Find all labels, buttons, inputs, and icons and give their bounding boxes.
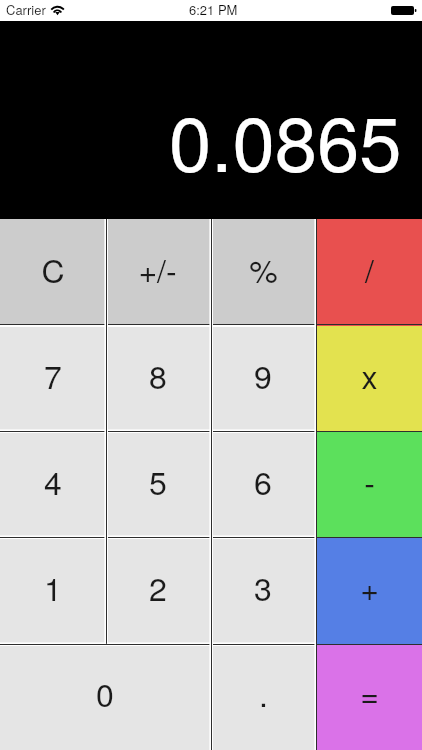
staticText: / — [365, 246, 374, 292]
button[interactable]: = — [316, 644, 422, 750]
button[interactable]: 5 — [105, 432, 210, 538]
staticText: 6:21 PM — [189, 0, 238, 19]
staticText: Carrier — [6, 0, 46, 19]
staticText: 9 — [254, 352, 272, 398]
button[interactable]: 1 — [0, 538, 105, 644]
staticText: . — [259, 670, 268, 716]
button[interactable]: 4 — [0, 432, 105, 538]
staticText: - — [364, 458, 375, 504]
button[interactable]: / — [316, 219, 422, 326]
staticText: 0.0865 — [169, 85, 402, 194]
button[interactable]: . — [210, 644, 316, 750]
staticText: 6 — [254, 458, 272, 504]
button[interactable]: 7 — [0, 326, 105, 432]
button[interactable]: 3 — [210, 538, 316, 644]
button[interactable]: - — [316, 432, 422, 538]
staticText: 2 — [149, 564, 167, 610]
staticText: 1 — [44, 564, 62, 610]
staticText: 0 — [96, 670, 114, 716]
other: Wi-Fi signal — [51, 5, 64, 15]
staticText: = — [360, 670, 379, 716]
other: Battery full — [391, 6, 416, 15]
button[interactable]: +/- — [105, 219, 210, 326]
button[interactable]: 8 — [105, 326, 210, 432]
staticText: C — [41, 246, 65, 292]
button[interactable]: x — [316, 326, 422, 432]
button[interactable]: 6 — [210, 432, 316, 538]
staticText: 3 — [254, 564, 272, 610]
button[interactable]: C — [0, 219, 105, 326]
button[interactable]: + — [316, 538, 422, 644]
staticText: 5 — [149, 458, 167, 504]
staticText: + — [360, 564, 379, 610]
button[interactable]: 2 — [105, 538, 210, 644]
button[interactable]: 0 — [0, 644, 210, 750]
staticText: % — [249, 246, 278, 292]
button[interactable]: % — [210, 219, 316, 326]
staticText: 4 — [44, 458, 62, 504]
button[interactable]: 9 — [210, 326, 316, 432]
staticText: +/- — [138, 246, 177, 292]
staticText: 8 — [149, 352, 167, 398]
staticText: x — [361, 352, 378, 398]
staticText: 7 — [44, 352, 62, 398]
